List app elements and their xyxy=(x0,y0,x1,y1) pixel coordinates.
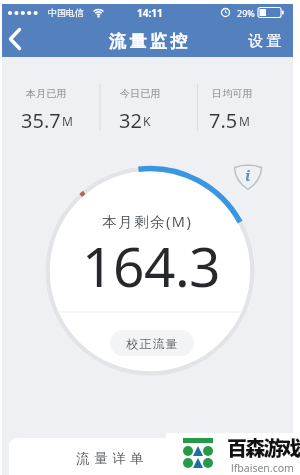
staticText: 7.5 xyxy=(209,107,238,131)
staticText: i xyxy=(245,165,251,185)
staticText: 校正流量 xyxy=(126,336,178,351)
staticText: M xyxy=(239,113,250,129)
staticText: 164.3 xyxy=(82,228,221,302)
staticText: 设置 xyxy=(247,32,283,51)
staticText: 今日已用 xyxy=(120,87,161,100)
staticText: K xyxy=(143,113,151,129)
staticText: 35.7 xyxy=(21,107,61,131)
button[interactable]: 校正流量 xyxy=(110,330,194,356)
staticText: 中国电信 xyxy=(48,7,84,18)
staticText: 14:11 xyxy=(137,6,163,20)
staticText: 流量监控 xyxy=(107,31,189,52)
button[interactable] xyxy=(232,159,264,191)
button[interactable] xyxy=(8,28,22,50)
staticText: 32 xyxy=(119,107,142,131)
staticText: M xyxy=(62,113,73,129)
staticText: 流量详单 xyxy=(74,450,146,467)
staticText: 29% xyxy=(237,7,255,19)
staticText: 日均可用 xyxy=(212,87,253,100)
button[interactable]: 流量详单 xyxy=(9,438,292,475)
staticText: 百森游戏 xyxy=(227,433,300,458)
staticText: lfbaisen.com xyxy=(231,461,294,473)
staticText: 本月剩余(M) xyxy=(102,211,193,231)
button[interactable]: 设置 xyxy=(243,23,287,59)
staticText: 本月已用 xyxy=(26,87,67,100)
